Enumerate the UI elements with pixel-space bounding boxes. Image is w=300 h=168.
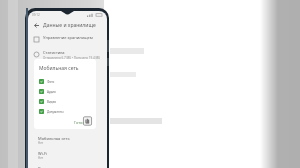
staticText: Аудио (47, 90, 56, 94)
staticText: Фото (47, 80, 55, 84)
staticText: Готово (74, 120, 88, 125)
button[interactable]: Статистика (28, 49, 107, 61)
button[interactable]: В роуминге (38, 166, 107, 168)
staticText: Данные и хранилище (43, 22, 96, 29)
staticText: В роуминге (38, 166, 61, 168)
staticText: Wi-Fi (38, 151, 48, 156)
button[interactable]: Управление хранилищем (28, 34, 107, 45)
staticText: Нет (38, 156, 44, 160)
staticText: Документы (47, 110, 64, 114)
button[interactable]: Документы (39, 109, 91, 114)
staticText: Мобильная сеть (39, 65, 79, 72)
staticText: Управление хранилищем (43, 35, 93, 40)
button[interactable]: Готово (71, 119, 91, 126)
button[interactable]: Wi-Fi (38, 151, 107, 160)
button[interactable]: Назад (31, 20, 41, 30)
button[interactable]: Аудио (39, 89, 91, 94)
staticText: Нет (38, 141, 44, 145)
button[interactable]: Мобильная сеть (38, 136, 107, 145)
staticText: Статистика (43, 50, 65, 55)
staticText: 09:12 (32, 13, 40, 17)
button[interactable]: Фото (39, 79, 91, 84)
staticText: Видео (47, 100, 57, 104)
button[interactable]: Видео (39, 99, 91, 104)
staticText: Мобильная сеть (38, 136, 70, 141)
staticText: Отправлено 6.7 МБ • Получено 19.4 МБ (43, 56, 101, 60)
